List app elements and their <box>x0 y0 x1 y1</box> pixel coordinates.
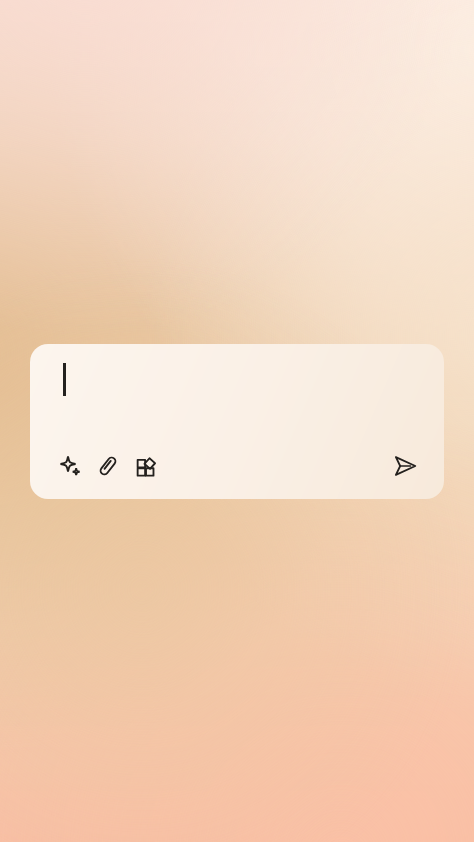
button[interactable]: Apps and gifts <box>131 451 161 481</box>
button[interactable]: AI suggestions <box>55 451 85 481</box>
button[interactable]: Attach file <box>93 451 123 481</box>
button[interactable]: AI suggestions <box>30 344 444 499</box>
button[interactable]: Send <box>388 449 422 483</box>
